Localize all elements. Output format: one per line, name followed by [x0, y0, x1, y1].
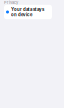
- staticText: Your data stays on device: [11, 7, 44, 17]
- staticText: Privacy: [4, 0, 18, 5]
